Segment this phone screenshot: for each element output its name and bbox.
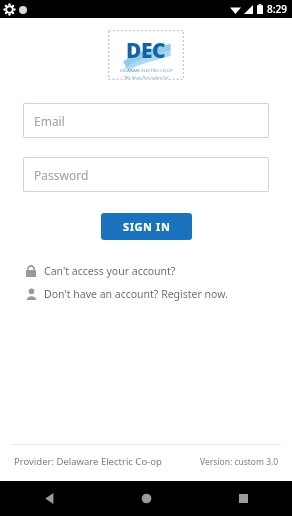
staticText: "We Keep The Lights On" [123, 75, 170, 80]
button[interactable]: Back [0, 481, 98, 516]
button[interactable]: Password [23, 157, 269, 192]
button[interactable]: Recent apps [195, 481, 292, 516]
staticText: SIGN IN [123, 219, 171, 234]
staticText: DELAWARE ELECTRIC CO-OP [120, 68, 173, 73]
button[interactable]: Home [98, 481, 195, 516]
staticText: Can't access your account? [44, 264, 176, 278]
staticText: Version: custom 3.0 [200, 456, 279, 468]
staticText: Don't have an account? Register now. [44, 287, 228, 301]
staticText: 8:29 [267, 2, 287, 16]
staticText: Password [34, 167, 89, 183]
button[interactable]: Don't have an account? Register now. [20, 284, 272, 303]
staticText: Email [34, 113, 65, 129]
staticText: Provider: Delaware Electric Co-op [14, 455, 162, 468]
button[interactable]: Email [23, 103, 269, 138]
staticText: DEC [126, 36, 166, 65]
button[interactable]: SIGN IN [101, 213, 192, 240]
button[interactable]: Can't access your account? [20, 261, 272, 280]
